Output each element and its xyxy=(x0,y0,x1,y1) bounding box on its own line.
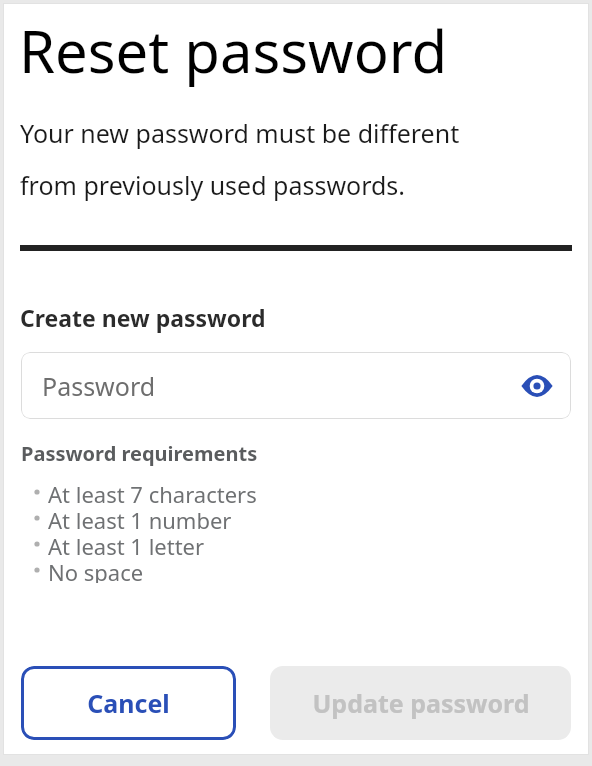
staticText: Password xyxy=(42,369,517,403)
button[interactable]: Cancel xyxy=(21,666,236,740)
staticText: from previously used passwords. xyxy=(20,168,406,202)
staticText: Password requirements xyxy=(21,440,258,467)
staticText: Create new password xyxy=(20,302,266,333)
button[interactable]: Show password xyxy=(517,366,557,406)
button[interactable]: Password xyxy=(21,352,571,419)
staticText: Update password xyxy=(312,686,530,720)
staticText: Cancel xyxy=(87,686,170,720)
staticText: No space xyxy=(48,557,144,583)
button[interactable]: Update password xyxy=(270,666,571,740)
staticText: Your new password must be different xyxy=(20,116,460,150)
staticText: At least 1 number xyxy=(48,505,232,531)
staticText: At least 7 characters xyxy=(48,479,257,505)
staticText: Reset password xyxy=(19,11,448,90)
staticText: At least 1 letter xyxy=(48,531,205,557)
